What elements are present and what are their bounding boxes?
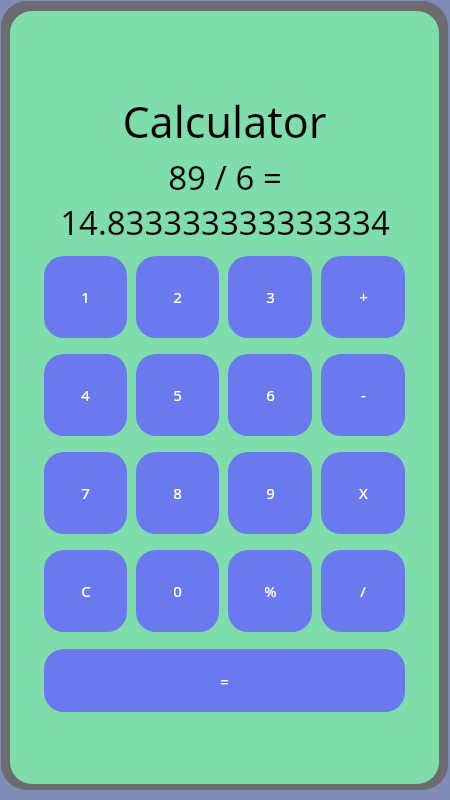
button[interactable]: + <box>321 256 405 338</box>
button[interactable]: 4 <box>44 354 127 436</box>
staticText: % <box>264 581 277 601</box>
staticText: 9 <box>266 483 275 503</box>
button[interactable]: 8 <box>136 452 219 534</box>
button[interactable]: 6 <box>228 354 312 436</box>
staticText: 5 <box>173 385 182 405</box>
staticText: 2 <box>173 287 182 307</box>
staticText: / <box>360 581 366 601</box>
staticText: - <box>361 385 366 405</box>
button[interactable]: C <box>44 550 127 632</box>
button[interactable]: / <box>321 550 405 632</box>
staticText: 3 <box>266 287 275 307</box>
staticText: Calculator <box>122 92 327 151</box>
staticText: 14.833333333333334 <box>60 200 390 245</box>
button[interactable]: 9 <box>228 452 312 534</box>
staticText: X <box>359 483 368 503</box>
button[interactable]: % <box>228 550 312 632</box>
staticText: 4 <box>81 385 90 405</box>
button[interactable]: = <box>44 649 405 712</box>
staticText: 1 <box>81 287 90 307</box>
button[interactable]: - <box>321 354 405 436</box>
staticText: 8 <box>173 483 182 503</box>
staticText: 89 / 6 = <box>168 155 282 200</box>
staticText: C <box>81 581 91 601</box>
staticText: = <box>220 671 229 691</box>
button[interactable]: 1 <box>44 256 127 338</box>
button[interactable]: 0 <box>136 550 219 632</box>
button[interactable]: 3 <box>228 256 312 338</box>
button[interactable]: X <box>321 452 405 534</box>
button[interactable]: 5 <box>136 354 219 436</box>
staticText: 0 <box>173 581 182 601</box>
staticText: 6 <box>266 385 275 405</box>
staticText: 7 <box>81 483 90 503</box>
button[interactable]: 7 <box>44 452 127 534</box>
button[interactable]: 2 <box>136 256 219 338</box>
staticText: + <box>359 287 368 307</box>
